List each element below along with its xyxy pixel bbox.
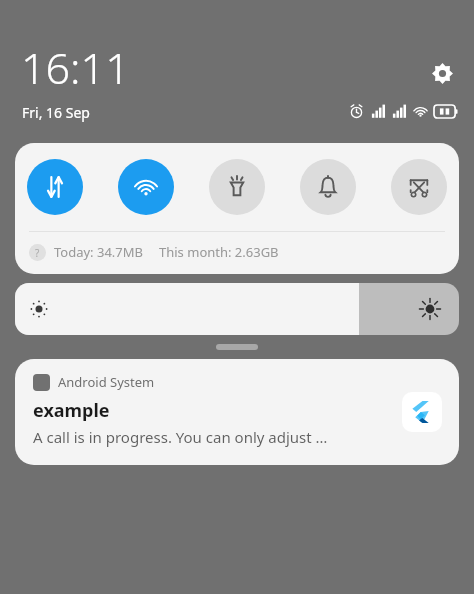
staticText: ?	[35, 246, 40, 260]
staticText: Fri, 16 Sep	[22, 103, 90, 122]
staticText: This month: 2.63GB	[159, 243, 279, 261]
button[interactable]: Android System	[15, 359, 459, 465]
button[interactable]: Flashlight	[209, 159, 265, 215]
staticText: example	[33, 398, 110, 423]
button[interactable]: ?	[15, 232, 459, 274]
button[interactable]: Do not disturb	[300, 159, 356, 215]
staticText: 16:11	[21, 38, 130, 97]
button[interactable]: Screenshot	[391, 159, 447, 215]
button[interactable]: Brightness	[15, 283, 459, 335]
button[interactable]: Settings	[424, 55, 460, 91]
staticText: Android System	[58, 373, 155, 391]
staticText: Today: 34.7MB	[54, 243, 143, 261]
button[interactable]: Wi-Fi	[118, 159, 174, 215]
staticText: A call is in progress. You can only adju…	[33, 427, 328, 447]
button[interactable]: Mobile data	[27, 159, 83, 215]
